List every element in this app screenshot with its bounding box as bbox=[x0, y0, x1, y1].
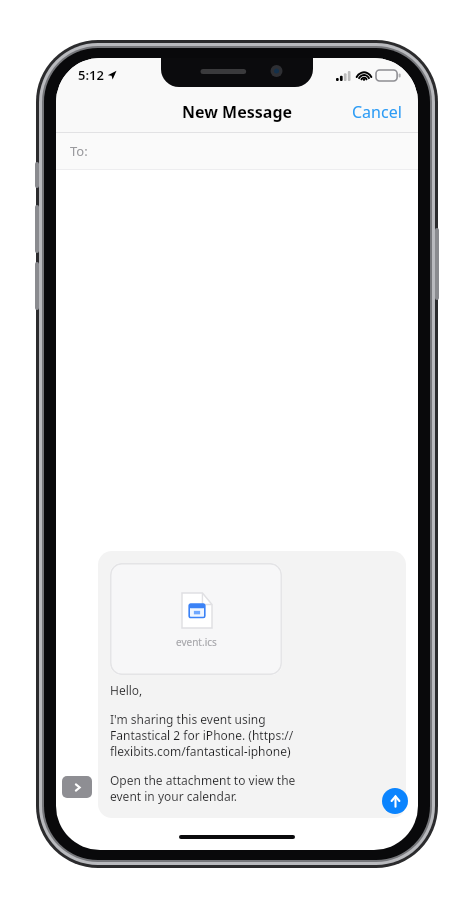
staticText: Open the attachment to view the bbox=[110, 772, 296, 788]
button[interactable]: To: bbox=[56, 133, 418, 169]
staticText: Hello, bbox=[110, 682, 143, 698]
staticText: event in your calendar. bbox=[110, 788, 237, 804]
staticText: Fantastical 2 for iPhone. (https:// bbox=[110, 727, 294, 743]
staticText: I'm sharing this event using bbox=[110, 711, 266, 727]
button[interactable]: Expand app drawer bbox=[62, 776, 92, 798]
button[interactable]: Cancel bbox=[336, 93, 418, 131]
staticText: event.ics bbox=[176, 635, 217, 649]
button[interactable]: event.ics bbox=[110, 563, 282, 675]
staticText: To: bbox=[70, 142, 88, 160]
staticText: 5:12 bbox=[78, 66, 104, 84]
staticText: Cancel bbox=[352, 101, 402, 123]
staticText: New Message bbox=[182, 101, 293, 123]
staticText: flexibits.com/fantastical-iphone) bbox=[110, 743, 291, 759]
button[interactable]: event.ics bbox=[98, 551, 406, 818]
button[interactable]: Send bbox=[382, 788, 408, 814]
